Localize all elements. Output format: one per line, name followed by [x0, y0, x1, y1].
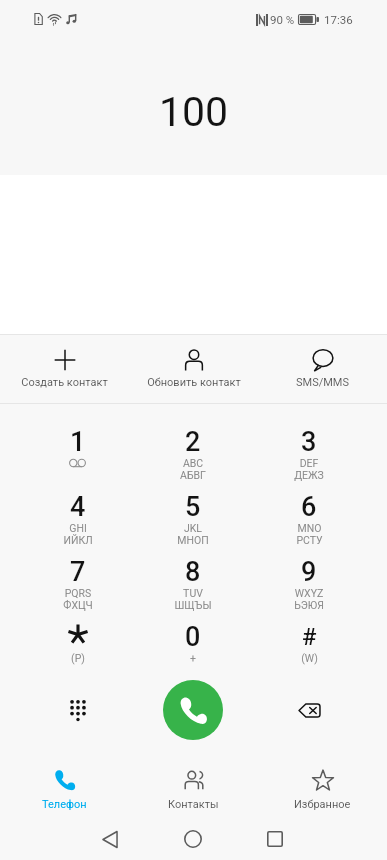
button[interactable]: Телефон — [0, 760, 129, 818]
button[interactable]: 3 — [251, 404, 367, 469]
button[interactable]: (P) — [20, 599, 135, 664]
staticText: DEF ДЕЖЗ — [294, 457, 324, 481]
staticText: MNO РСТУ — [296, 522, 323, 546]
staticText: 4 — [70, 491, 86, 523]
button[interactable]: Создать контакт — [0, 335, 129, 403]
staticText: SMS/MMS — [296, 376, 349, 389]
button[interactable]: Backspace — [251, 677, 367, 743]
staticText: GHI ИЙКЛ — [63, 522, 93, 546]
staticText: 5 — [185, 491, 201, 523]
button[interactable]: Контакты — [129, 760, 258, 818]
staticText: Создать контакт — [21, 376, 108, 389]
button[interactable]: 6 — [251, 469, 367, 534]
button[interactable]: 9 — [251, 534, 367, 599]
staticText: JKL МНОП — [177, 522, 209, 546]
staticText: WXYZ ЬЭЮЯ — [294, 587, 324, 611]
staticText: TUV ШЩЪЫ — [174, 587, 212, 611]
staticText: # — [302, 623, 317, 651]
button[interactable]: 5 — [135, 469, 251, 534]
staticText: 17:36 — [324, 13, 353, 26]
button[interactable]: SMS/MMS — [258, 335, 387, 403]
staticText: ABC АБВГ — [180, 457, 206, 481]
staticText: Избранное — [294, 798, 351, 811]
staticText: 3 — [301, 426, 317, 458]
staticText: PQRS ФХЦЧ — [63, 587, 93, 611]
button[interactable]: 0 — [135, 599, 251, 664]
button[interactable]: Recents — [251, 818, 299, 860]
staticText: Телефон — [42, 798, 87, 811]
button[interactable]: Обновить контакт — [129, 335, 258, 403]
button[interactable]: 7 — [20, 534, 135, 599]
button[interactable]: Back — [86, 818, 134, 860]
staticText: 1 — [70, 426, 86, 458]
button[interactable]: 1 — [20, 404, 135, 469]
staticText: (P) — [71, 652, 85, 664]
staticText: 100 — [159, 88, 229, 136]
button[interactable]: Home — [169, 818, 217, 860]
button[interactable]: 4 — [20, 469, 135, 534]
button[interactable]: # — [251, 599, 367, 664]
staticText: 90 % — [270, 13, 295, 26]
staticText: 9 — [301, 556, 317, 588]
button[interactable]: Избранное — [258, 760, 387, 818]
button[interactable]: Hide keypad — [20, 677, 135, 743]
staticText: Обновить контакт — [147, 376, 241, 389]
staticText: Контакты — [168, 798, 219, 811]
staticText: + — [190, 652, 196, 664]
button[interactable]: 2 — [135, 404, 251, 469]
staticText: (W) — [301, 652, 318, 664]
staticText: 6 — [301, 491, 317, 523]
staticText: 7 — [70, 556, 86, 588]
button[interactable]: 8 — [135, 534, 251, 599]
staticText: 2 — [185, 426, 201, 458]
staticText: 8 — [185, 556, 201, 588]
button[interactable]: Call — [163, 680, 223, 740]
staticText: 0 — [185, 621, 201, 653]
